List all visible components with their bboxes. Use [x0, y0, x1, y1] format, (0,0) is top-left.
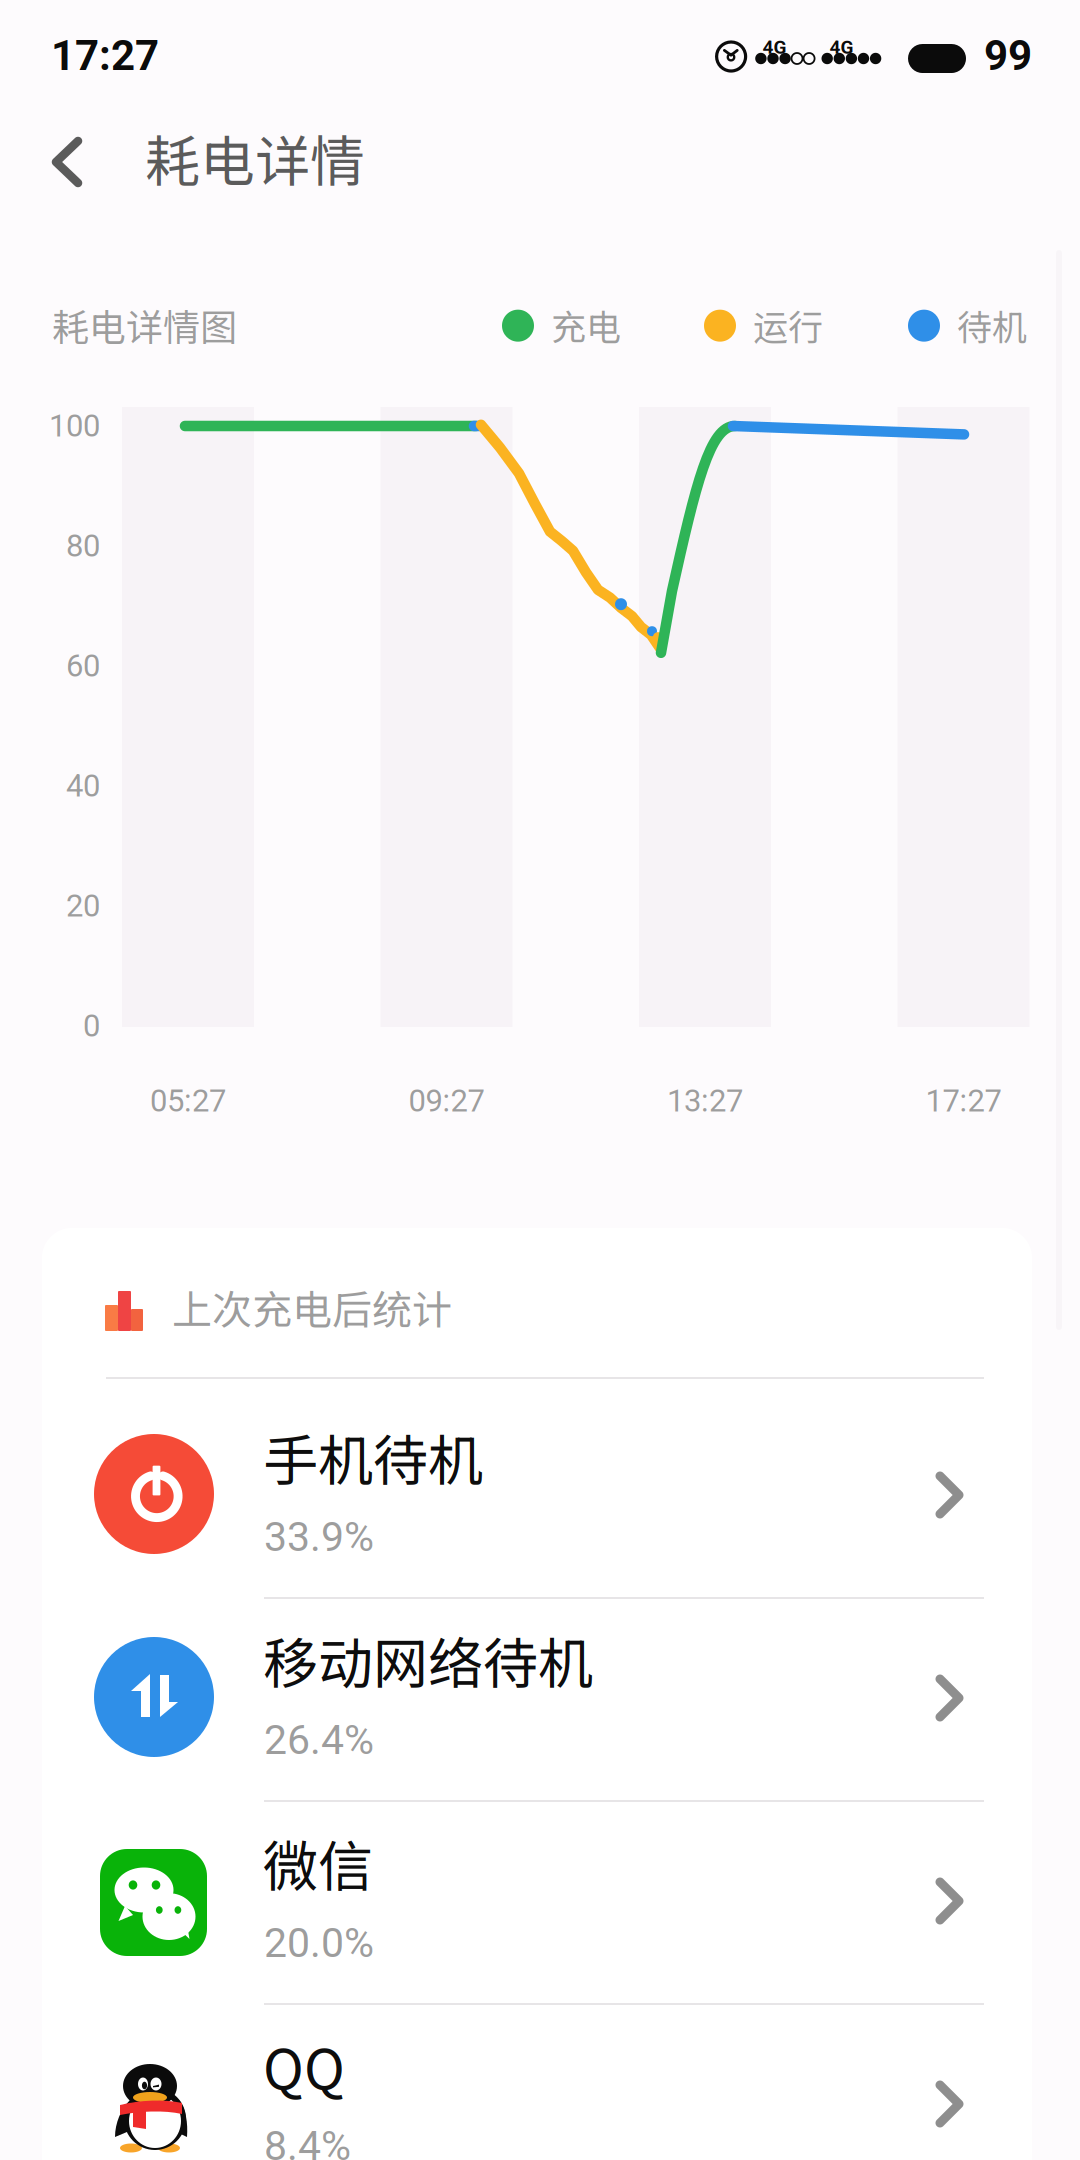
staticText: 4G — [829, 36, 853, 58]
staticText: 移动网络待机 — [263, 1620, 593, 1700]
staticText: 微信 — [263, 1823, 373, 1903]
staticText: 17:27 — [925, 1083, 1001, 1119]
staticText: 上次充电后统计 — [172, 1278, 452, 1336]
staticText: 33.9% — [264, 1513, 374, 1561]
staticText: 0 — [83, 1008, 100, 1044]
staticText: 60 — [66, 648, 100, 684]
staticText: 13:27 — [667, 1083, 743, 1119]
staticText: QQ — [263, 2026, 345, 2106]
staticText: 耗电详情图 — [52, 298, 237, 352]
staticText: 运行 — [753, 300, 823, 350]
staticText: 充电 — [551, 300, 621, 350]
button[interactable]: 手机待机 — [42, 1377, 1032, 1580]
button[interactable]: 返回 — [34, 119, 134, 219]
staticText: 耗电详情 — [145, 118, 365, 198]
staticText: 26.4% — [264, 1716, 374, 1764]
staticText: 20.0% — [264, 1919, 374, 1967]
staticText: 99 — [984, 31, 1032, 80]
staticText: 待机 — [957, 300, 1027, 350]
staticText: 40 — [66, 768, 100, 804]
staticText: 8.4% — [264, 2122, 351, 2160]
staticText: 4G — [762, 36, 786, 58]
staticText: 09:27 — [408, 1083, 484, 1119]
button[interactable]: 微信 — [42, 1783, 1032, 1986]
staticText: 手机待机 — [263, 1417, 483, 1497]
staticText: 05:27 — [150, 1083, 226, 1119]
button[interactable]: 移动网络待机 — [42, 1580, 1032, 1783]
staticText: 17:27 — [51, 31, 159, 80]
staticText: 80 — [66, 528, 100, 564]
staticText: 100 — [49, 408, 100, 444]
staticText: 20 — [66, 888, 100, 924]
button[interactable]: QQ — [42, 1986, 1032, 2160]
